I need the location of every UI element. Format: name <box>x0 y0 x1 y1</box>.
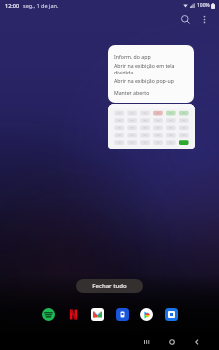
button[interactable]: Netflix <box>65 306 81 322</box>
staticText: 100% <box>197 2 210 9</box>
button[interactable]: Gmail <box>89 306 105 322</box>
button[interactable]: Mais opções <box>196 11 213 28</box>
button[interactable]: Início <box>164 334 180 350</box>
staticText: 12:00 <box>5 2 20 9</box>
button[interactable]: Play Store <box>138 306 154 322</box>
button[interactable]: Fechar tudo <box>76 279 143 293</box>
button[interactable] <box>108 104 195 149</box>
button[interactable]: Arquivos <box>114 306 130 322</box>
staticText: Abrir na exibição em tela dividida <box>114 62 188 74</box>
staticText: Inform. do app <box>114 53 151 60</box>
staticText: Abrir na exibição pop-up <box>114 77 174 84</box>
button[interactable]: Abrir na exibição em tela dividida <box>108 62 194 74</box>
staticText: Manter aberto <box>114 89 150 96</box>
button[interactable]: Agenda <box>163 306 179 322</box>
button[interactable]: Voltar <box>189 334 205 350</box>
staticText: seg., 1 de jan. <box>23 2 59 9</box>
button[interactable]: Spotify <box>40 306 56 322</box>
button[interactable]: Inform. do app <box>108 50 194 62</box>
button[interactable]: Manter aberto <box>108 86 194 98</box>
button[interactable]: Pesquisar <box>177 11 194 28</box>
button[interactable]: Recentes <box>139 334 155 350</box>
button[interactable]: Abrir na exibição pop-up <box>108 74 194 86</box>
staticText: Fechar tudo <box>92 282 127 290</box>
